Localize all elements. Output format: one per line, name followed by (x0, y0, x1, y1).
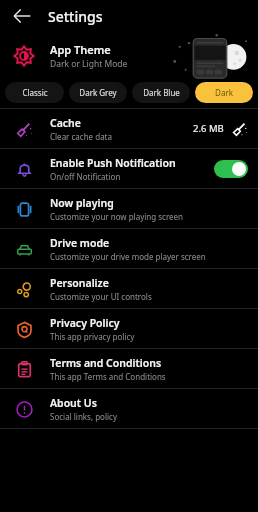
staticText: This app privacy policy (50, 331, 135, 342)
staticText: Dark (215, 87, 233, 98)
button[interactable]: Cache (0, 109, 258, 148)
staticText: Customize your now playing screen (50, 211, 184, 222)
staticText: About Us (50, 396, 97, 410)
staticText: Cache (50, 116, 81, 130)
staticText: Customize your drive mode player screen (50, 251, 206, 262)
staticText: Dark Blue (143, 87, 180, 98)
staticText: Terms and Conditions (50, 356, 162, 370)
button[interactable]: Dark Grey (69, 82, 127, 103)
staticText: Privacy Policy (50, 316, 120, 330)
staticText: App Theme (50, 42, 111, 57)
staticText: Dark or Light Mode (50, 58, 128, 70)
button[interactable]: Toggle push notification (214, 160, 248, 178)
button[interactable]: Terms and Conditions (0, 349, 258, 388)
staticText: Clear cache data (50, 131, 112, 142)
staticText: This app Terms and Conditions (50, 371, 166, 382)
staticText: Social links, policy (50, 411, 117, 422)
staticText: Customize your UI controls (50, 291, 152, 302)
button[interactable]: Enable Push Notification (0, 149, 258, 188)
button[interactable]: About Us (0, 389, 258, 428)
staticText: On/off Notification (50, 171, 121, 182)
staticText: Settings (48, 7, 103, 26)
staticText: Enable Push Notification (50, 156, 176, 170)
button[interactable]: Privacy Policy (0, 309, 258, 348)
button[interactable]: Dark (195, 82, 253, 103)
staticText: Personalize (50, 276, 109, 290)
button[interactable]: Drive mode (0, 229, 258, 268)
staticText: 2.6 MB (193, 122, 224, 135)
button[interactable]: Dark Blue (132, 82, 190, 103)
staticText: Drive mode (50, 236, 110, 250)
button[interactable]: Now playing (0, 189, 258, 228)
button[interactable]: Classic (5, 82, 64, 103)
staticText: Classic (22, 87, 48, 98)
button[interactable]: Back (8, 2, 36, 30)
staticText: Now playing (50, 196, 114, 210)
button[interactable]: Personalize (0, 269, 258, 308)
staticText: Dark Grey (79, 87, 117, 98)
